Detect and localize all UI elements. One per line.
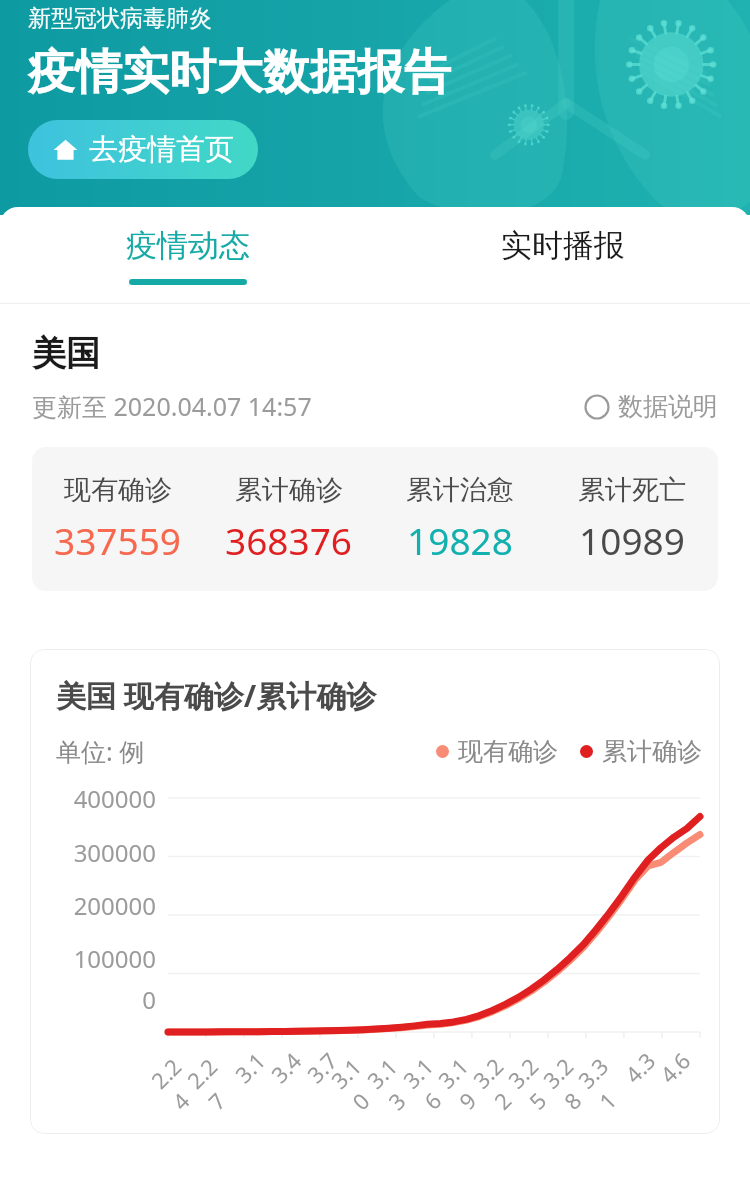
button[interactable]: 数据说明 [584, 391, 718, 422]
staticText: 0 [142, 983, 156, 1016]
staticText: 4.3 [618, 1045, 662, 1089]
staticText: 美国 现有确诊/累计确诊 [56, 675, 377, 716]
staticText: 3.4 [264, 1045, 308, 1089]
button[interactable]: 疫情动态 [0, 207, 375, 303]
staticText: 3.7 [300, 1045, 344, 1089]
staticText: 疫情实时大数据报告 [28, 43, 451, 102]
staticText: 4.6 [653, 1045, 697, 1089]
staticText: 单位: 例 [56, 734, 145, 768]
staticText: 疫情动态 [126, 226, 250, 265]
staticText: 现有确诊 [458, 736, 558, 767]
button[interactable]: 美国 现有确诊/累计确诊 [30, 649, 720, 1134]
staticText: 3.13 [360, 1048, 428, 1116]
staticText: 3.1 [228, 1045, 272, 1089]
staticText: 300000 [73, 836, 156, 869]
staticText: 100000 [73, 942, 156, 975]
staticText: 400000 [73, 782, 156, 815]
staticText: 3.25 [501, 1048, 568, 1116]
staticText: 3.28 [536, 1048, 603, 1116]
staticText: 更新至 2020.04.07 14:57 [32, 389, 312, 423]
staticText: 实时播报 [501, 226, 625, 265]
button[interactable]: 实时播报 [375, 207, 750, 303]
staticText: 累计死亡 [578, 473, 686, 507]
staticText: 累计确诊 [235, 473, 343, 507]
staticText: 200000 [73, 889, 156, 922]
button[interactable]: 现有确诊 [32, 447, 718, 591]
staticText: 368376 [225, 515, 352, 565]
staticText: 累计确诊 [602, 736, 702, 767]
staticText: 2.24 [144, 1048, 212, 1116]
staticText: 337559 [54, 515, 181, 565]
staticText: 3.31 [571, 1048, 638, 1116]
staticText: 新型冠状病毒肺炎 [28, 4, 212, 33]
staticText: 3.16 [396, 1048, 463, 1116]
staticText: 19828 [407, 515, 513, 565]
staticText: 3.22 [466, 1048, 533, 1116]
staticText: 2.27 [180, 1048, 248, 1116]
staticText: 数据说明 [618, 391, 718, 422]
staticText: 去疫情首页 [89, 131, 234, 168]
staticText: 美国 [32, 332, 100, 375]
staticText: 10989 [579, 515, 685, 565]
staticText: 3.10 [324, 1048, 392, 1116]
button[interactable]: 去疫情首页 [28, 120, 258, 179]
staticText: 现有确诊 [64, 473, 172, 507]
staticText: 累计治愈 [406, 473, 514, 507]
staticText: 3.19 [431, 1048, 498, 1116]
